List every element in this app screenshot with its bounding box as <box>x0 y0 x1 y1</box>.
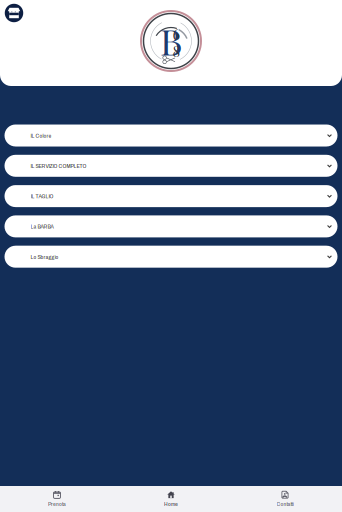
button[interactable]: IL Colore <box>4 124 337 146</box>
staticText: La BARBA <box>30 222 53 231</box>
button[interactable]: Negozio <box>0 0 23 22</box>
button[interactable]: IL TAGLIO <box>4 185 337 207</box>
staticText: Lo Sbraggio <box>30 253 58 261</box>
staticText: 8 <box>172 41 180 61</box>
staticText: B <box>160 16 182 64</box>
button[interactable]: Home <box>114 486 228 512</box>
button[interactable]: La BARBA <box>4 215 337 237</box>
staticText: IL Colore <box>30 131 51 140</box>
button[interactable]: Contatti <box>228 486 342 512</box>
button[interactable]: Prenota <box>0 486 114 512</box>
staticText: Prenota <box>48 500 66 508</box>
staticText: Contatti <box>276 500 293 508</box>
button[interactable]: Lo Sbraggio <box>4 246 337 268</box>
staticText: IL TAGLIO <box>30 192 53 200</box>
staticText: 6 <box>172 24 180 44</box>
staticText: Home <box>164 500 178 508</box>
staticText: IL SERVIZIO COMPLETO <box>30 162 86 170</box>
button[interactable]: IL SERVIZIO COMPLETO <box>4 155 337 177</box>
